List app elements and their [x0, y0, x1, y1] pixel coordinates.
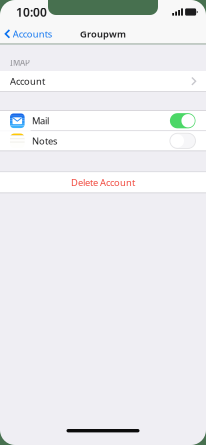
staticText: Mail [32, 115, 49, 127]
button[interactable]: Account [0, 71, 206, 91]
staticText: Account [10, 75, 45, 87]
button[interactable]: Notes [0, 131, 206, 151]
staticText: Notes [32, 135, 57, 147]
button[interactable]: Mail [0, 111, 206, 130]
staticText: Delete Account [71, 176, 135, 189]
staticText: IMAP [10, 57, 30, 68]
staticText: 10:00 [16, 4, 47, 20]
button[interactable]: Delete Account [0, 172, 206, 193]
button[interactable]: Accounts [0, 24, 58, 44]
staticText: Groupwm [80, 28, 126, 40]
staticText: Accounts [13, 28, 52, 40]
